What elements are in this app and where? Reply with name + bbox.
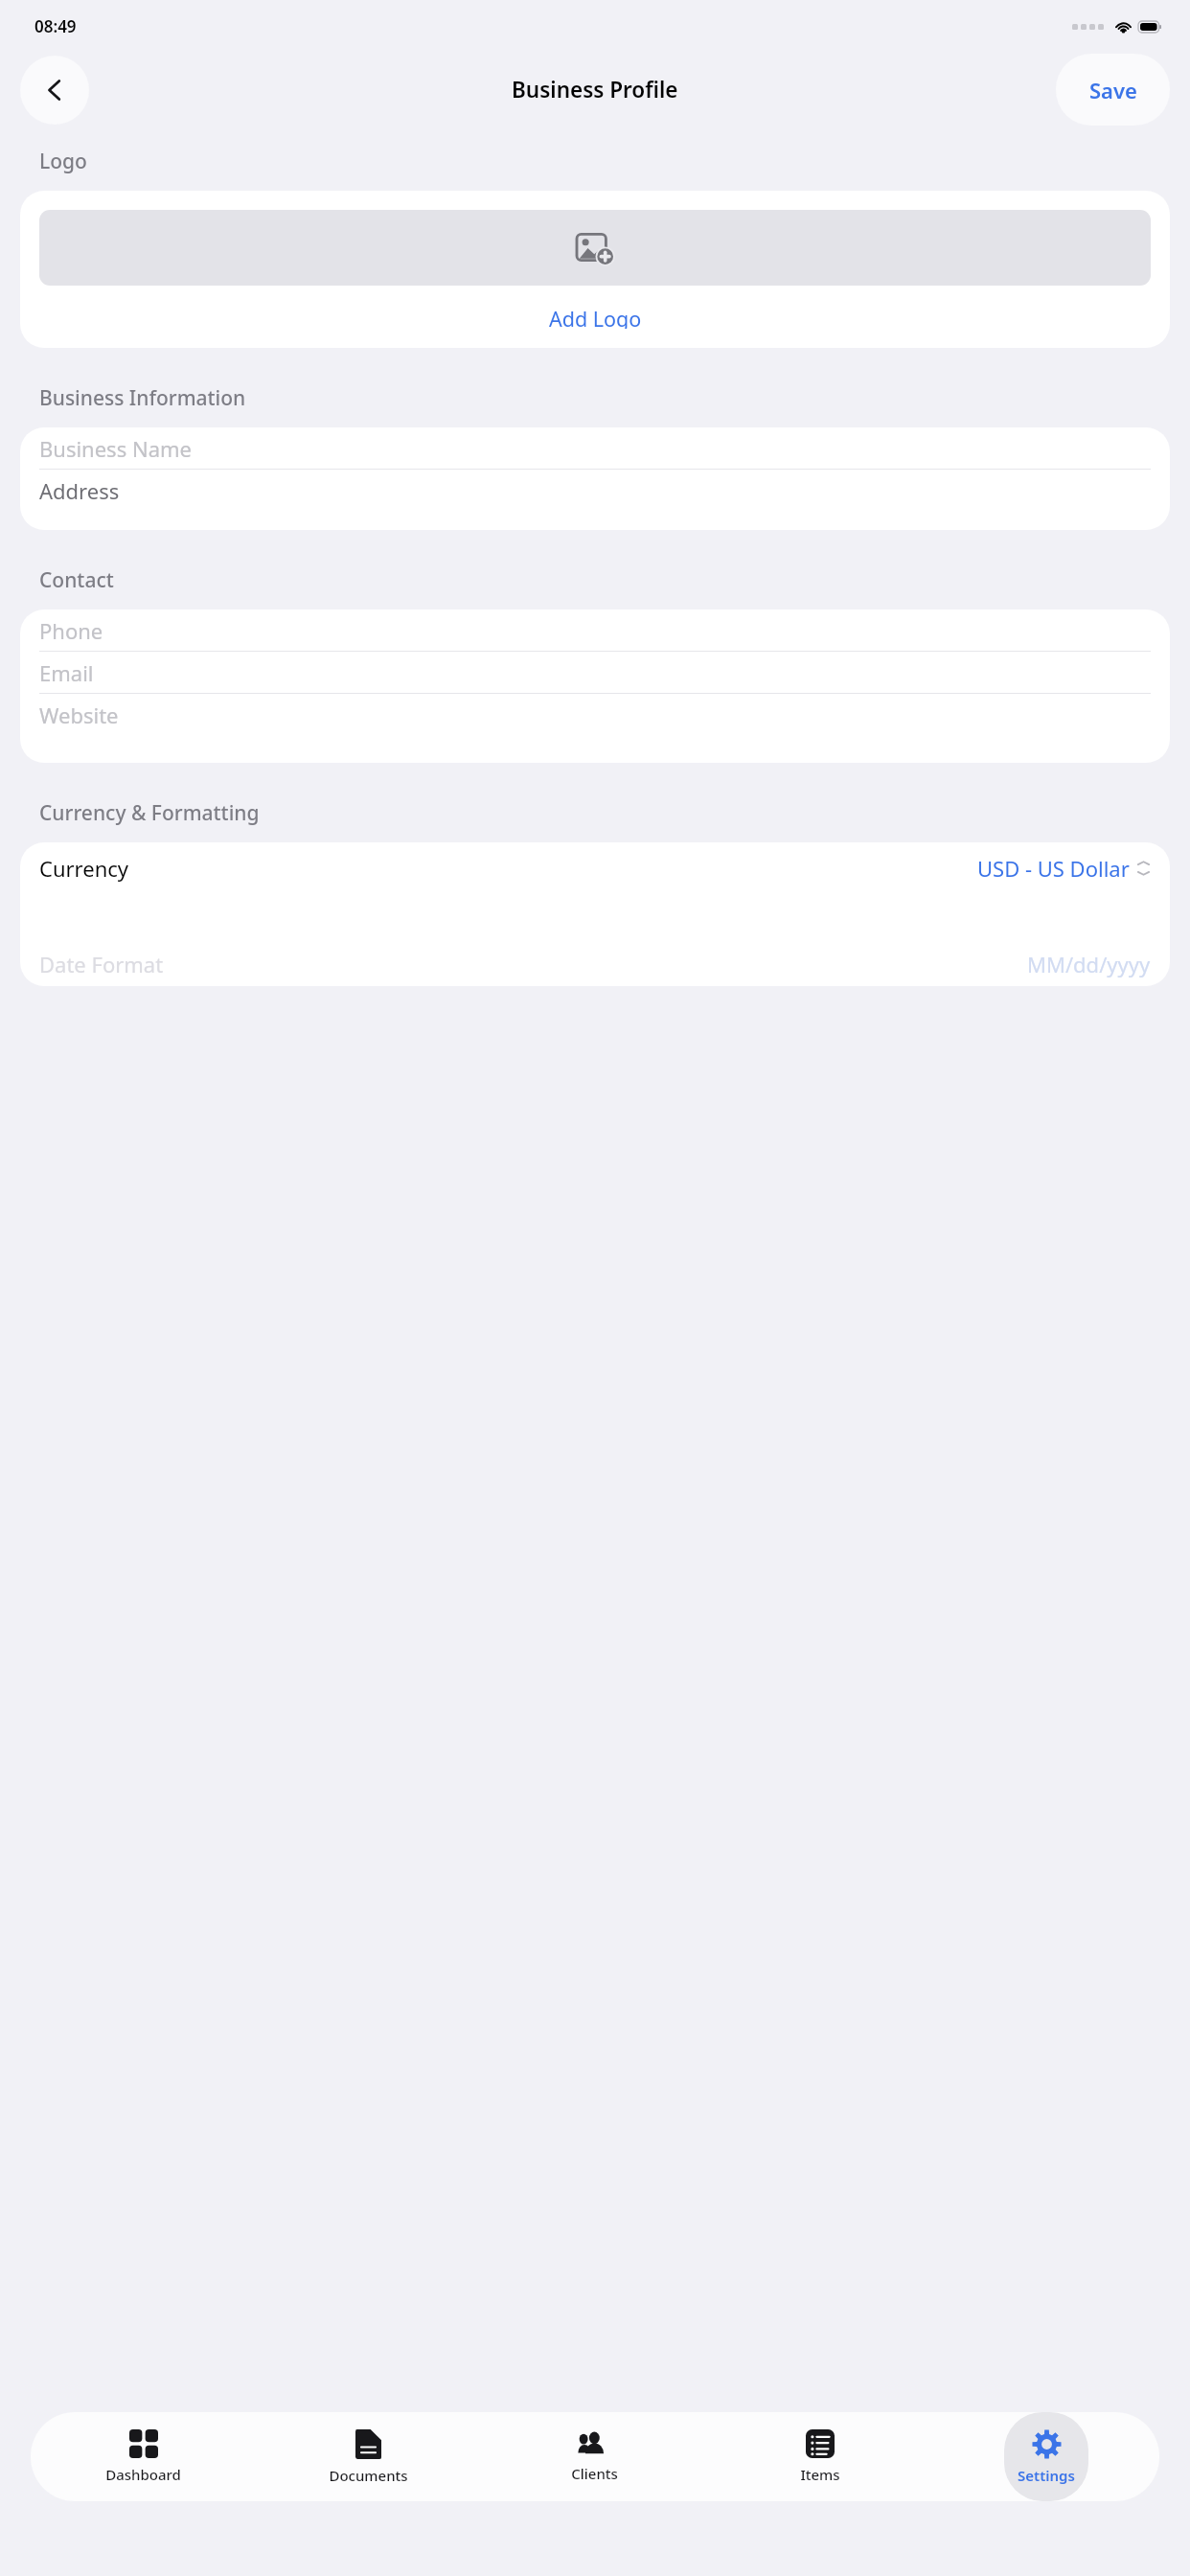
staticText: 08:49 — [34, 15, 77, 37]
button[interactable]: Currency — [39, 842, 1151, 893]
button[interactable]: Save — [1056, 54, 1170, 126]
staticText: Items — [800, 2465, 840, 2484]
button[interactable]: Select logo image — [39, 210, 1151, 286]
staticText: Documents — [329, 2466, 408, 2485]
staticText: Contact — [39, 566, 114, 594]
staticText: Currency & Formatting — [39, 799, 260, 827]
button[interactable]: Dashboard — [105, 2412, 181, 2501]
staticText: Website — [39, 701, 119, 729]
staticText: Currency — [39, 854, 129, 883]
staticText: Address — [39, 476, 120, 505]
button[interactable]: Email — [39, 652, 1170, 693]
staticText: MM/dd/yyyy — [1027, 950, 1151, 978]
button[interactable]: Clients — [571, 2412, 618, 2501]
staticText: Clients — [571, 2464, 618, 2483]
button[interactable]: Website — [39, 694, 1170, 735]
button[interactable]: Add Logo — [39, 305, 1151, 329]
button[interactable]: Back — [20, 56, 89, 125]
staticText: Business Information — [39, 384, 246, 412]
button[interactable]: Business Name — [39, 427, 1170, 469]
button[interactable]: Documents — [329, 2412, 408, 2501]
staticText: Settings — [1018, 2466, 1075, 2485]
staticText: Logo — [39, 148, 87, 175]
staticText: USD - US Dollar — [977, 854, 1130, 883]
staticText: Dashboard — [105, 2465, 181, 2484]
staticText: Date Format — [39, 950, 164, 978]
staticText: Business Name — [39, 434, 192, 463]
staticText: Save — [1089, 76, 1137, 104]
staticText: Email — [39, 658, 94, 687]
button[interactable]: Items — [800, 2412, 840, 2501]
button[interactable]: Settings — [1018, 2412, 1075, 2501]
staticText: Add Logo — [549, 305, 642, 329]
button[interactable]: Address — [39, 470, 1170, 511]
staticText: Phone — [39, 616, 103, 645]
staticText: Business Profile — [512, 75, 678, 104]
button[interactable]: Phone — [39, 609, 1170, 651]
